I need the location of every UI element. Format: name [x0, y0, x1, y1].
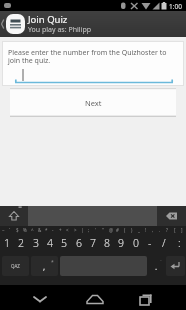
staticText: *: [45, 227, 48, 233]
staticText: 1:00: [169, 2, 182, 11]
staticText: You play as: Philipp: [28, 25, 91, 35]
staticText: Join Quiz: [28, 13, 68, 26]
staticText: :: [178, 236, 181, 250]
staticText: /: [162, 236, 166, 250]
staticText: .: [159, 227, 161, 233]
staticText: 2: [18, 236, 24, 250]
staticText: 7: [90, 236, 96, 250]
staticText: -: [148, 236, 152, 250]
staticText: ˙˙: [160, 259, 162, 264]
button[interactable]: 5: [57, 233, 71, 253]
staticText: [: [174, 227, 176, 233]
button[interactable]: Next: [10, 88, 176, 117]
button[interactable]: 6: [72, 233, 86, 253]
staticText: (: [124, 227, 126, 233]
staticText: ": [102, 227, 104, 233]
button[interactable]: 7: [86, 233, 100, 253]
staticText: _: [138, 227, 140, 233]
button[interactable]: [24, 285, 56, 310]
staticText: 3: [33, 236, 39, 250]
button[interactable]: /: [157, 233, 171, 253]
staticText: >: [74, 227, 77, 233]
staticText: 0: [133, 236, 139, 250]
staticText: 9: [118, 236, 124, 250]
staticText: ): [131, 227, 133, 233]
staticText: ': [95, 227, 97, 233]
staticText: %: [23, 227, 27, 233]
button[interactable]: 0: [129, 233, 143, 253]
button[interactable]: QAZ: [2, 256, 29, 276]
staticText: ,: [43, 261, 46, 272]
staticText: Next: [85, 98, 102, 108]
staticText: 1: [4, 236, 10, 250]
staticText: 8: [104, 236, 110, 250]
staticText: ,: [152, 227, 154, 233]
button[interactable]: 8: [100, 233, 114, 253]
staticText: 4: [47, 236, 53, 250]
staticText: *: [51, 259, 54, 266]
button[interactable]: [14, 65, 174, 85]
staticText: Please enter the number from the Quizhos…: [8, 48, 167, 58]
button[interactable]: 3: [29, 233, 43, 253]
button[interactable]: [0, 206, 28, 226]
button[interactable]: [79, 285, 111, 310]
staticText: &: [38, 227, 42, 233]
button[interactable]: -: [143, 233, 157, 253]
staticText: ~: [2, 227, 5, 233]
staticText: ;: [88, 227, 90, 233]
staticText: |: [81, 227, 84, 233]
button[interactable]: 4: [43, 233, 57, 253]
staticText: ^: [31, 227, 34, 233]
button[interactable]: :: [172, 233, 186, 253]
staticText: 6: [76, 236, 82, 250]
staticText: +: [59, 227, 62, 233]
button[interactable]: 9: [114, 233, 128, 253]
button[interactable]: [6, 14, 25, 34]
staticText: ?: [166, 227, 168, 233]
button[interactable]: [130, 285, 162, 310]
staticText: QAZ: [11, 263, 20, 269]
button[interactable]: ,: [31, 256, 58, 276]
staticText: -: [52, 227, 54, 233]
button[interactable]: .: [149, 256, 164, 276]
button[interactable]: 2: [14, 233, 28, 253]
staticText: <: [66, 227, 69, 233]
staticText: @: [109, 227, 114, 233]
staticText: $: [16, 227, 19, 233]
staticText: .: [155, 261, 158, 272]
staticText: 5: [61, 236, 67, 250]
button[interactable]: [157, 206, 186, 226]
staticText: join the quiz.: [8, 56, 51, 66]
button[interactable]: 1: [0, 233, 14, 253]
staticText: ]: [181, 227, 183, 233]
button[interactable]: [166, 256, 185, 276]
staticText: #: [116, 227, 119, 233]
staticText: !: [145, 227, 147, 233]
staticText: `: [9, 227, 11, 233]
